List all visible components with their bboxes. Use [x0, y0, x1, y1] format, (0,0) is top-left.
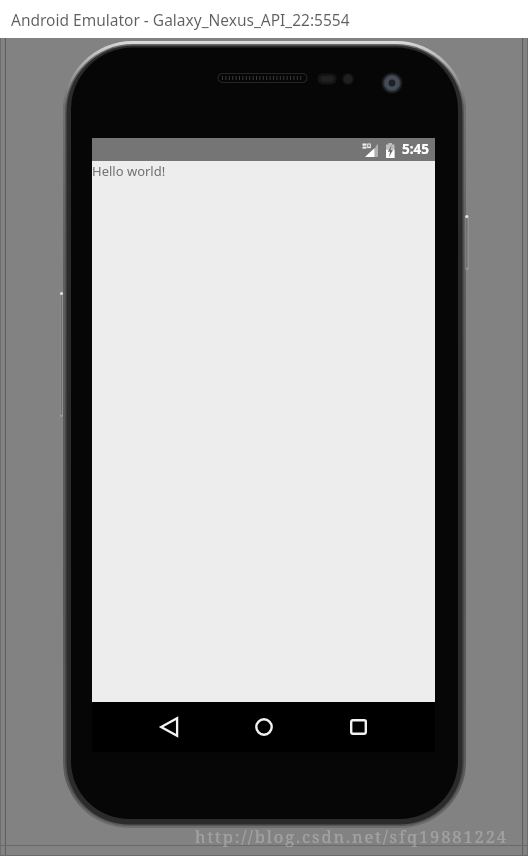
button[interactable]: Home — [235, 702, 293, 752]
button[interactable]: Back — [140, 702, 198, 752]
staticText: 5:45 — [402, 140, 429, 158]
staticText: http://blog.csdn.net/sfq19881224 — [195, 825, 508, 847]
staticText: Android Emulator - Galaxy_Nexus_API_22:5… — [11, 9, 350, 30]
staticText: Hello world! — [92, 162, 166, 180]
button[interactable]: Recent apps — [329, 702, 387, 752]
